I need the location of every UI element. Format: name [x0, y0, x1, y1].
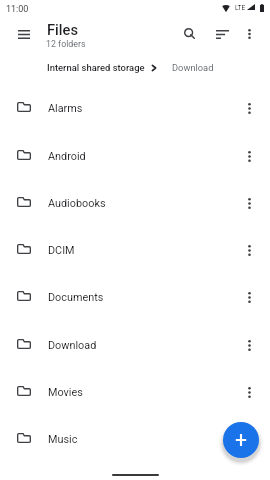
staticText: Files [47, 21, 79, 38]
button[interactable]: More options for Movies [237, 371, 261, 413]
button[interactable]: More options for Music [237, 418, 261, 460]
staticText: Android [48, 150, 86, 163]
staticText: Movies [48, 386, 83, 399]
staticText: Download [48, 339, 97, 352]
button[interactable]: More options for Documents [237, 276, 261, 318]
button[interactable]: More options for Alarms [237, 87, 261, 129]
button[interactable]: Download [0, 322, 270, 369]
button[interactable]: Download [172, 62, 214, 73]
button[interactable]: More options [237, 22, 261, 46]
button[interactable]: Alarms [0, 85, 270, 132]
staticText: LTE [235, 4, 246, 12]
staticText: 11:00 [6, 4, 29, 15]
staticText: Audiobooks [48, 197, 106, 210]
staticText: 12 folders [46, 39, 86, 49]
button[interactable]: Audiobooks [0, 180, 270, 227]
button[interactable]: Internal shared storage [47, 62, 145, 73]
staticText: Music [48, 433, 78, 446]
button[interactable]: Music [0, 416, 270, 463]
button[interactable]: Documents [0, 274, 270, 321]
button[interactable]: Search [177, 21, 201, 45]
button[interactable]: Open navigation drawer [12, 22, 36, 46]
button[interactable]: Sort [210, 22, 234, 46]
button[interactable]: More options for DCIM [237, 229, 261, 271]
staticText: Alarms [48, 102, 83, 115]
button[interactable]: More options for Audiobooks [237, 182, 261, 224]
button[interactable]: DCIM [0, 227, 270, 274]
button[interactable]: Movies [0, 369, 270, 416]
staticText: Documents [48, 291, 104, 304]
staticText: DCIM [48, 244, 75, 257]
button[interactable]: More options for Download [237, 324, 261, 366]
button[interactable]: Create new folder [223, 422, 259, 458]
button[interactable]: More options for Android [237, 135, 261, 177]
button[interactable]: Android [0, 133, 270, 180]
